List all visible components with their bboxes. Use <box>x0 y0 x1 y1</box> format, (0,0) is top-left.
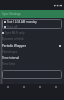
staticText: Sync Wi-Fi only <box>5 31 25 35</box>
staticText: Text 12:34 AM monday <box>7 20 37 24</box>
staticText: Dynamic refresh <box>2 37 24 41</box>
button[interactable]: Tab 2 <box>16 84 32 100</box>
button[interactable]: Dynamic refresh <box>2 36 64 42</box>
button[interactable] <box>2 70 62 79</box>
button[interactable]: Tab 4 <box>48 84 64 100</box>
staticText: Period sync <box>2 50 18 54</box>
button[interactable]: Time interval <box>2 55 64 61</box>
button[interactable]: Sync Settings <box>0 10 64 18</box>
staticText: Sync Settings <box>2 12 21 16</box>
button[interactable]: Tab 3 <box>32 84 48 100</box>
staticText: Time interval <box>2 56 20 60</box>
button[interactable]: Text 12:34 AM monday <box>2 19 62 29</box>
staticText: Sync off <box>7 25 18 29</box>
button[interactable]: Sync Wi-Fi only <box>2 30 64 36</box>
button[interactable]: Time limit <box>2 61 64 67</box>
staticText: Periodic Wrapper <box>2 44 26 48</box>
staticText: Time limit <box>2 62 15 66</box>
button[interactable]: Periodic Wrapper <box>2 42 61 49</box>
button[interactable]: Period sync <box>2 49 64 55</box>
button[interactable]: Tab 1 <box>0 84 16 100</box>
